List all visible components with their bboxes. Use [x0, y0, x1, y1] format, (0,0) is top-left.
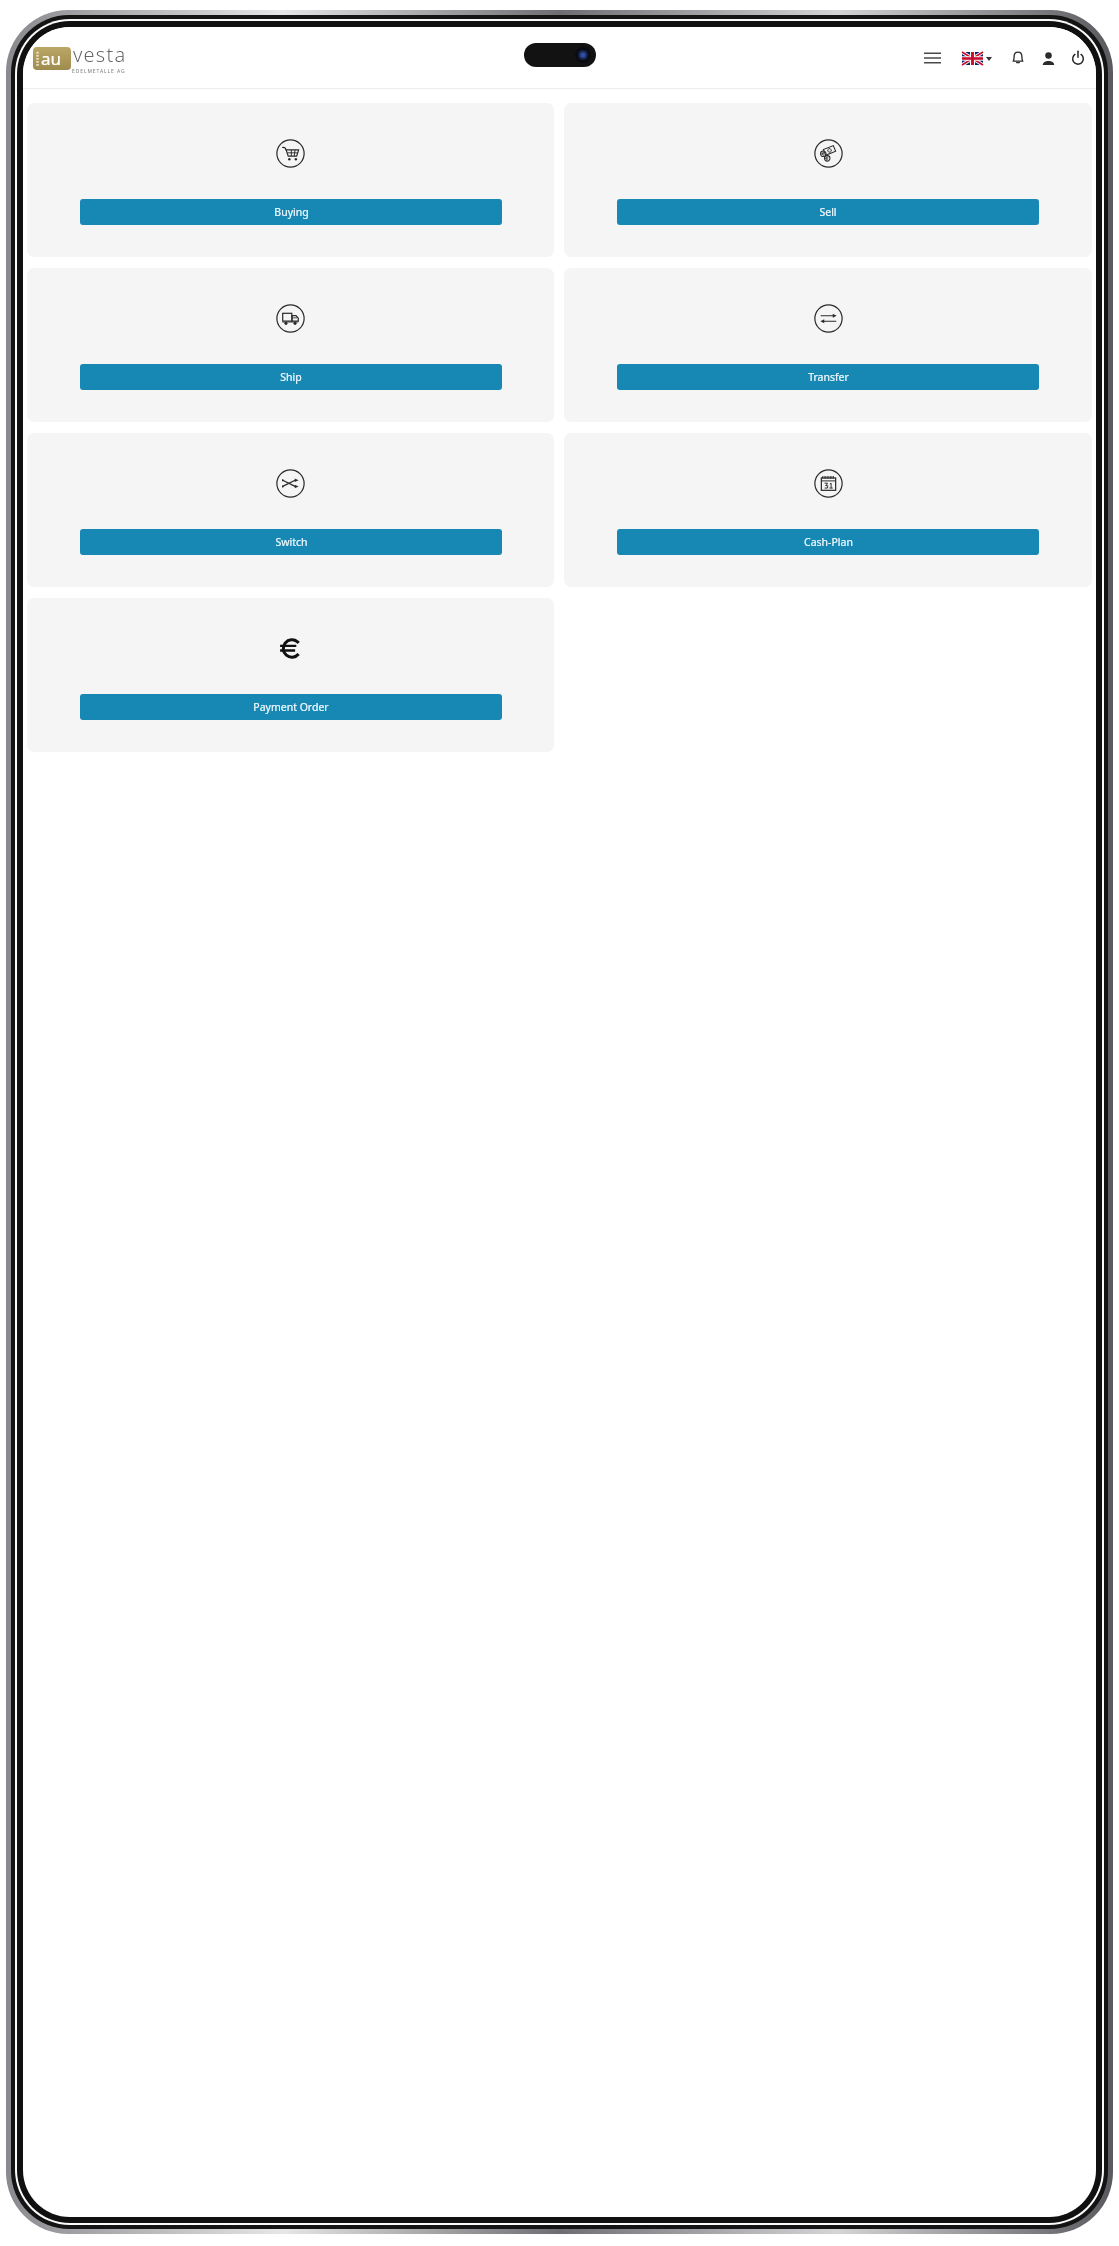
staticText: Sell: [819, 205, 837, 219]
button[interactable]: Transfer: [564, 268, 1092, 422]
button[interactable]: Sell: [564, 103, 1092, 257]
button[interactable]: Notifications: [1007, 47, 1029, 69]
button[interactable]: Cash-Plan: [564, 433, 1092, 587]
staticText: Switch: [275, 535, 308, 549]
staticText: EDELMETALLE AG: [72, 68, 126, 75]
button[interactable]: Ship: [27, 268, 554, 422]
button[interactable]: Sell: [617, 199, 1039, 225]
button[interactable]: Buying: [27, 103, 554, 257]
button[interactable]: Switch: [27, 433, 554, 587]
button[interactable]: Menu: [919, 45, 945, 71]
staticText: Cash-Plan: [804, 535, 853, 549]
staticText: Transfer: [808, 370, 849, 384]
button[interactable]: Buying: [80, 199, 502, 225]
button[interactable]: Switch: [80, 529, 502, 555]
staticText: vesta: [73, 41, 127, 68]
button[interactable]: Transfer: [617, 364, 1039, 390]
staticText: Ship: [280, 370, 302, 384]
button[interactable]: Cash-Plan: [617, 529, 1039, 555]
button[interactable]: Ship: [80, 364, 502, 390]
button[interactable]: Language English: [960, 50, 994, 67]
button[interactable]: Payment Order: [27, 598, 554, 752]
button[interactable]: Account: [1037, 47, 1059, 69]
staticText: au: [41, 47, 62, 68]
button[interactable]: Payment Order: [80, 694, 502, 720]
button[interactable]: Log out: [1067, 47, 1089, 69]
staticText: Buying: [274, 205, 309, 219]
staticText: Payment Order: [253, 700, 329, 714]
